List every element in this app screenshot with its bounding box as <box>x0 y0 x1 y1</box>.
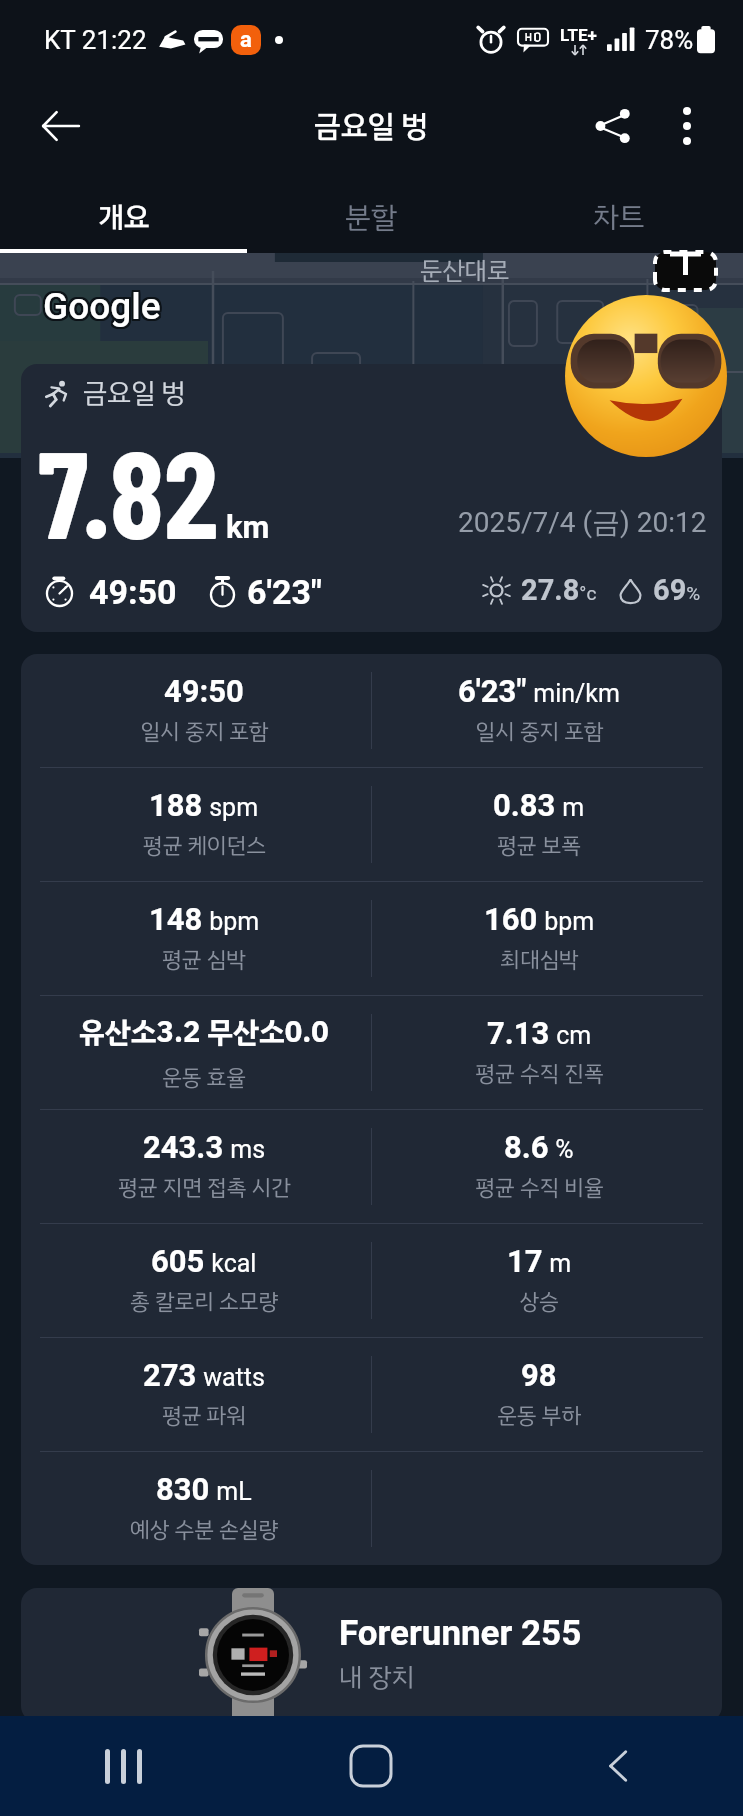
staticText: 78% <box>645 25 694 55</box>
staticText: 49:50 <box>164 673 244 709</box>
button[interactable]: Recent apps <box>0 1716 247 1816</box>
button[interactable]: Back <box>495 1716 743 1816</box>
button[interactable]: 유산소3.2 무산소0.0 <box>37 996 371 1109</box>
staticText: Google <box>42 284 160 327</box>
staticText: 유산소3.2 무산소0.0 <box>79 1011 329 1055</box>
staticText: 98 <box>521 1357 557 1393</box>
staticText: 830 <box>156 1471 210 1507</box>
button[interactable]: 금요일 벙 <box>21 364 722 632</box>
button[interactable]: More options <box>657 96 717 156</box>
staticText: 148 <box>149 901 203 937</box>
staticText: LTE+ <box>560 25 597 45</box>
staticText: 188 <box>149 787 203 823</box>
staticText: watts <box>197 1363 265 1392</box>
staticText: Google <box>41 287 159 330</box>
staticText: 운동 부하 <box>497 1399 581 1432</box>
staticText: m <box>556 793 585 822</box>
staticText: 상승 <box>519 1285 559 1318</box>
staticText: Google <box>44 284 162 327</box>
staticText: Google <box>43 285 161 328</box>
staticText: Google <box>41 286 159 329</box>
button[interactable]: 6'23" <box>372 654 706 767</box>
staticText: Google <box>44 287 162 330</box>
staticText: Google <box>41 285 159 328</box>
staticText: % <box>549 1135 574 1164</box>
staticText: 평균 파워 <box>162 1399 246 1432</box>
staticText: Google <box>45 283 163 326</box>
staticText: Google <box>44 286 162 329</box>
staticText: 일시 중지 포함 <box>475 715 604 748</box>
staticText: Google <box>41 283 159 326</box>
button[interactable]: 243.3 <box>37 1110 371 1223</box>
staticText: 예상 수분 손실량 <box>130 1513 278 1546</box>
button[interactable]: 160 <box>372 882 706 995</box>
staticText: 49:50 <box>89 572 177 608</box>
button[interactable]: 차트 <box>495 187 743 249</box>
staticText: bpm <box>203 907 260 936</box>
staticText: bpm <box>538 907 595 936</box>
staticText: 69% <box>653 573 701 607</box>
staticText: Google <box>45 284 163 327</box>
staticText: Google <box>43 287 161 330</box>
staticText: 평균 케이던스 <box>143 829 266 862</box>
staticText: Google <box>41 284 159 327</box>
staticText: 160 <box>484 901 538 937</box>
button[interactable]: 605 <box>37 1224 371 1337</box>
staticText: Google <box>44 285 162 328</box>
staticText: a <box>240 27 252 53</box>
staticText: 평균 지면 접촉 시간 <box>118 1171 291 1204</box>
button[interactable]: Home <box>247 1716 495 1816</box>
staticText: 평균 보폭 <box>497 829 581 862</box>
button[interactable]: 개요 <box>0 187 247 249</box>
staticText: 평균 심박 <box>162 943 246 976</box>
staticText: 17 <box>507 1243 543 1279</box>
staticText: 차트 <box>593 196 645 240</box>
staticText: 7.13 <box>487 1015 550 1051</box>
staticText: Google <box>45 286 163 329</box>
staticText: km <box>226 509 270 545</box>
staticText: 273 <box>143 1357 197 1393</box>
staticText: Google <box>42 283 160 326</box>
staticText: 최대심박 <box>500 943 579 976</box>
staticText: kcal <box>205 1249 257 1278</box>
button[interactable]: Share <box>581 94 645 158</box>
button[interactable]: 273 <box>37 1338 371 1451</box>
staticText: 8.6 <box>504 1129 549 1165</box>
staticText: Google <box>44 283 162 326</box>
button[interactable]: Back <box>28 94 92 158</box>
staticText: m <box>543 1249 572 1278</box>
staticText: Google <box>43 286 161 329</box>
staticText: Google <box>42 285 160 328</box>
staticText: 금요일 벙 <box>83 373 186 414</box>
staticText: Google <box>42 287 160 330</box>
staticText: mL <box>210 1477 252 1506</box>
staticText: min/km <box>527 679 620 708</box>
button[interactable]: 49:50 <box>37 654 371 767</box>
staticText: 총 칼로리 소모량 <box>130 1285 278 1318</box>
staticText: Google <box>42 286 160 329</box>
staticText: 내 장치 <box>339 1658 415 1697</box>
button[interactable]: 0.83 <box>372 768 706 881</box>
staticText: 605 <box>151 1243 205 1279</box>
button[interactable]: 8.6 <box>372 1110 706 1223</box>
staticText: 2025/7/4 (금) 20:12 <box>458 505 707 540</box>
button[interactable]: 17 <box>372 1224 706 1337</box>
staticText: 운동 효율 <box>162 1061 246 1094</box>
staticText: 일시 중지 포함 <box>140 715 269 748</box>
staticText: Forerunner 255 <box>339 1613 582 1654</box>
staticText: Google <box>45 287 163 330</box>
button[interactable]: Forerunner 255 <box>21 1588 722 1722</box>
button[interactable]: 분할 <box>247 187 495 249</box>
staticText: 둔산대로 <box>420 252 510 290</box>
staticText: 7.82 <box>38 416 218 564</box>
staticText: Google <box>43 284 161 327</box>
button[interactable]: 830 <box>37 1452 371 1565</box>
button[interactable]: 148 <box>37 882 371 995</box>
staticText: spm <box>203 793 259 822</box>
button[interactable]: 188 <box>37 768 371 881</box>
button[interactable]: 7.13 <box>372 996 706 1109</box>
staticText: ms <box>224 1135 266 1164</box>
button[interactable]: 98 <box>372 1338 706 1451</box>
staticText: cm <box>550 1021 592 1050</box>
staticText: Google <box>45 285 163 328</box>
